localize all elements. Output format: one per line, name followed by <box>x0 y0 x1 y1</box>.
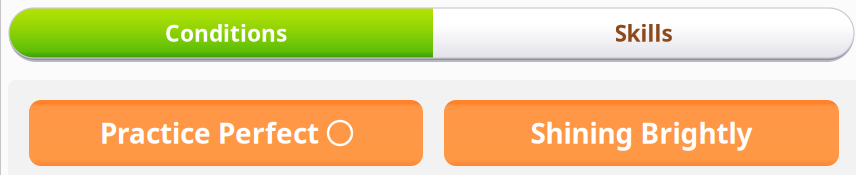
button[interactable]: Skills <box>433 8 854 58</box>
button[interactable]: Shining Brightly <box>444 100 839 166</box>
button[interactable]: Conditions <box>9 8 433 58</box>
staticText: Skills <box>614 18 672 48</box>
staticText: Shining Brightly <box>530 114 752 152</box>
staticText: Practice Perfect <box>100 114 319 152</box>
button[interactable]: Practice Perfect <box>29 100 423 166</box>
staticText: Conditions <box>165 18 287 48</box>
